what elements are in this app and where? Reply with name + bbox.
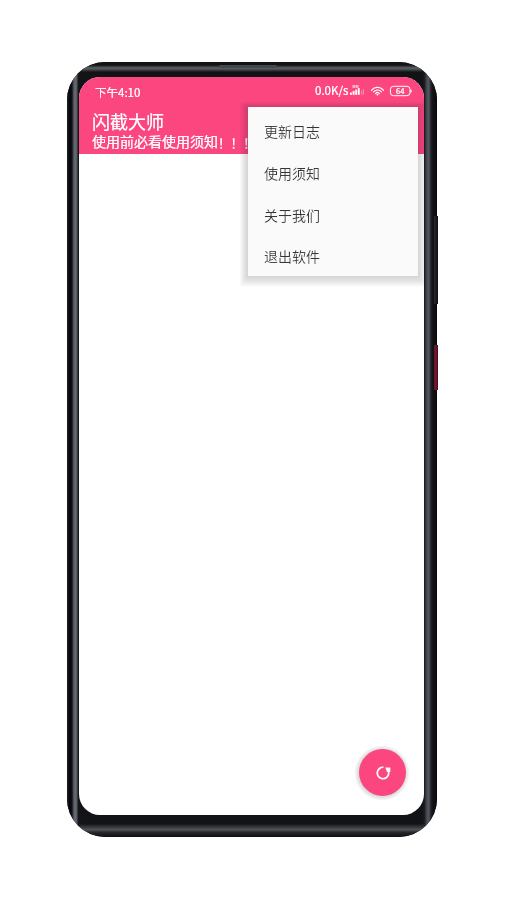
staticText: 闪截大师 (92, 108, 164, 134)
staticText: 下午4:10 (95, 84, 141, 101)
button[interactable]: 使用须知 (248, 152, 418, 194)
button[interactable]: 更新日志 (248, 110, 418, 152)
staticText: 更新日志 (264, 121, 320, 141)
button[interactable]: Refresh (359, 749, 406, 796)
button[interactable]: 退出软件 (248, 236, 418, 276)
staticText: 使用前必看使用须知 (92, 131, 218, 151)
staticText: 退出软件 (264, 246, 320, 266)
button[interactable]: 关于我们 (248, 194, 418, 236)
staticText: ！！！ (218, 133, 256, 151)
staticText: 关于我们 (264, 205, 320, 225)
staticText: 使用须知 (264, 163, 320, 183)
staticText: 64 (396, 85, 405, 96)
staticText: 0.0K/s (315, 82, 349, 99)
